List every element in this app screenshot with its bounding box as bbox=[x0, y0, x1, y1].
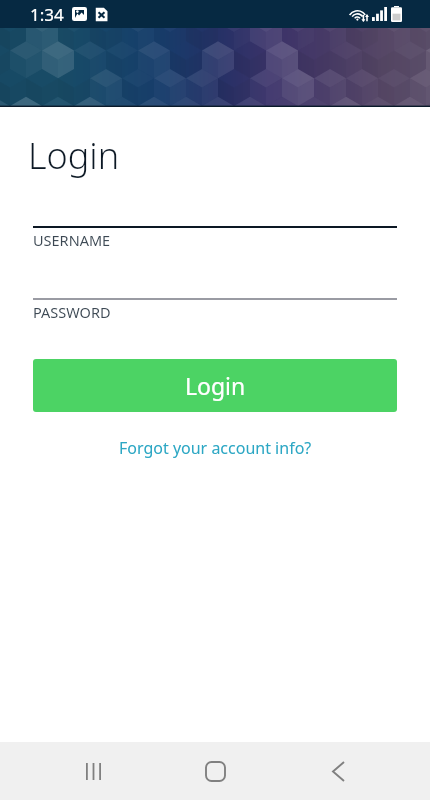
staticText: PASSWORD bbox=[33, 302, 111, 322]
button[interactable]: Login bbox=[33, 359, 397, 412]
button[interactable]: USERNAME bbox=[33, 194, 397, 250]
button[interactable]: PASSWORD bbox=[33, 266, 397, 322]
staticText: USERNAME bbox=[33, 230, 111, 250]
button[interactable]: Back bbox=[308, 742, 368, 800]
staticText: Login bbox=[28, 131, 120, 180]
staticText: 1:34 bbox=[30, 3, 64, 26]
button[interactable]: Recent apps bbox=[63, 742, 123, 800]
button[interactable]: Home bbox=[185, 742, 245, 800]
staticText: Login bbox=[185, 370, 246, 401]
button[interactable]: Forgot your account info? bbox=[109, 434, 322, 462]
